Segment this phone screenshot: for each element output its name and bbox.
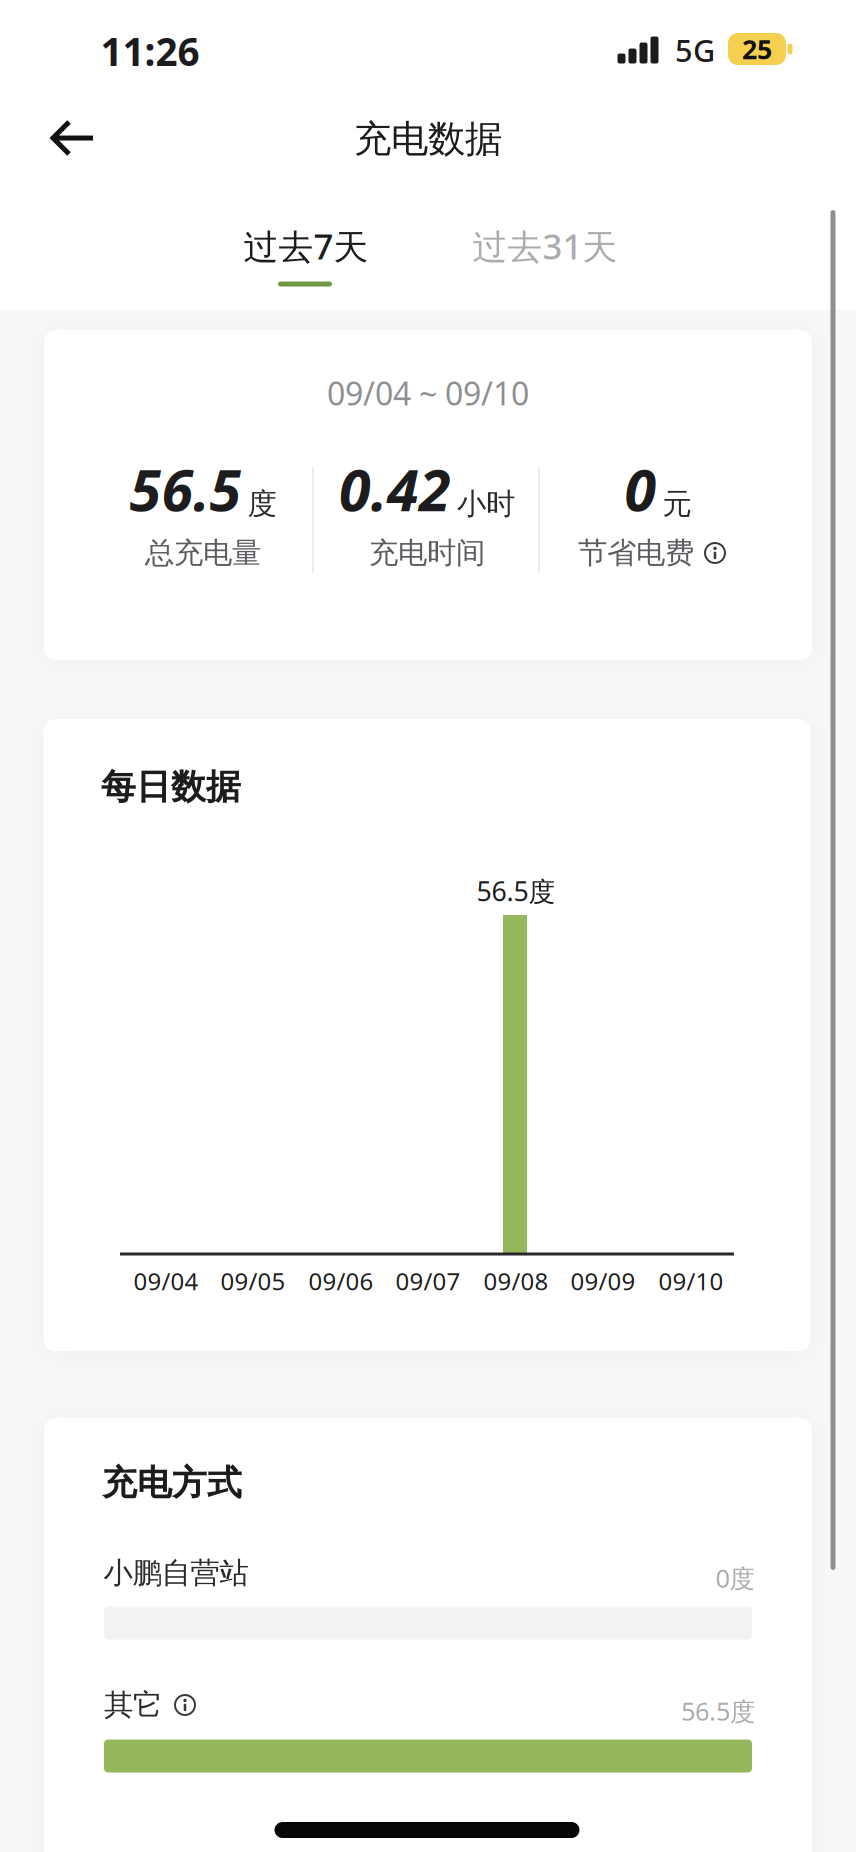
staticText: 过去7天: [243, 223, 368, 269]
staticText: 0.42: [339, 451, 451, 527]
staticText: 56.5: [129, 451, 241, 527]
staticText: 11:26: [100, 25, 199, 77]
staticText: 09/09: [570, 1265, 635, 1297]
button[interactable]: 节省电费说明: [704, 542, 726, 564]
staticText: 56.5度: [681, 1694, 755, 1728]
button[interactable]: 返回: [43, 110, 103, 166]
button[interactable]: 其它说明: [174, 1694, 196, 1716]
staticText: 09/07: [395, 1265, 460, 1297]
staticText: 25: [742, 31, 772, 67]
staticText: 09/06: [308, 1265, 373, 1297]
staticText: 过去31天: [472, 223, 617, 269]
staticText: 总充电量: [145, 535, 261, 571]
staticText: 09/08: [483, 1265, 548, 1297]
staticText: 09/10: [658, 1265, 723, 1297]
staticText: 充电时间: [369, 535, 485, 571]
staticText: 5G: [675, 30, 715, 70]
staticText: 0: [624, 451, 656, 527]
staticText: 56.5度: [476, 873, 555, 909]
staticText: 充电数据: [354, 116, 502, 162]
staticText: 小时: [457, 486, 515, 522]
staticText: 小鹏自营站: [103, 1555, 248, 1591]
staticText: 元: [662, 486, 691, 522]
staticText: 09/05: [220, 1265, 285, 1297]
staticText: 其它: [104, 1687, 162, 1723]
staticText: 每日数据: [101, 766, 241, 808]
staticText: 09/04: [133, 1265, 198, 1297]
staticText: 充电方式: [102, 1462, 242, 1504]
staticText: 0度: [715, 1561, 754, 1595]
staticText: 节省电费: [578, 535, 694, 571]
button[interactable]: 过去31天: [462, 215, 627, 277]
button[interactable]: 过去7天: [233, 215, 378, 277]
staticText: 09/04 ~ 09/10: [327, 372, 529, 414]
staticText: 度: [247, 486, 276, 522]
